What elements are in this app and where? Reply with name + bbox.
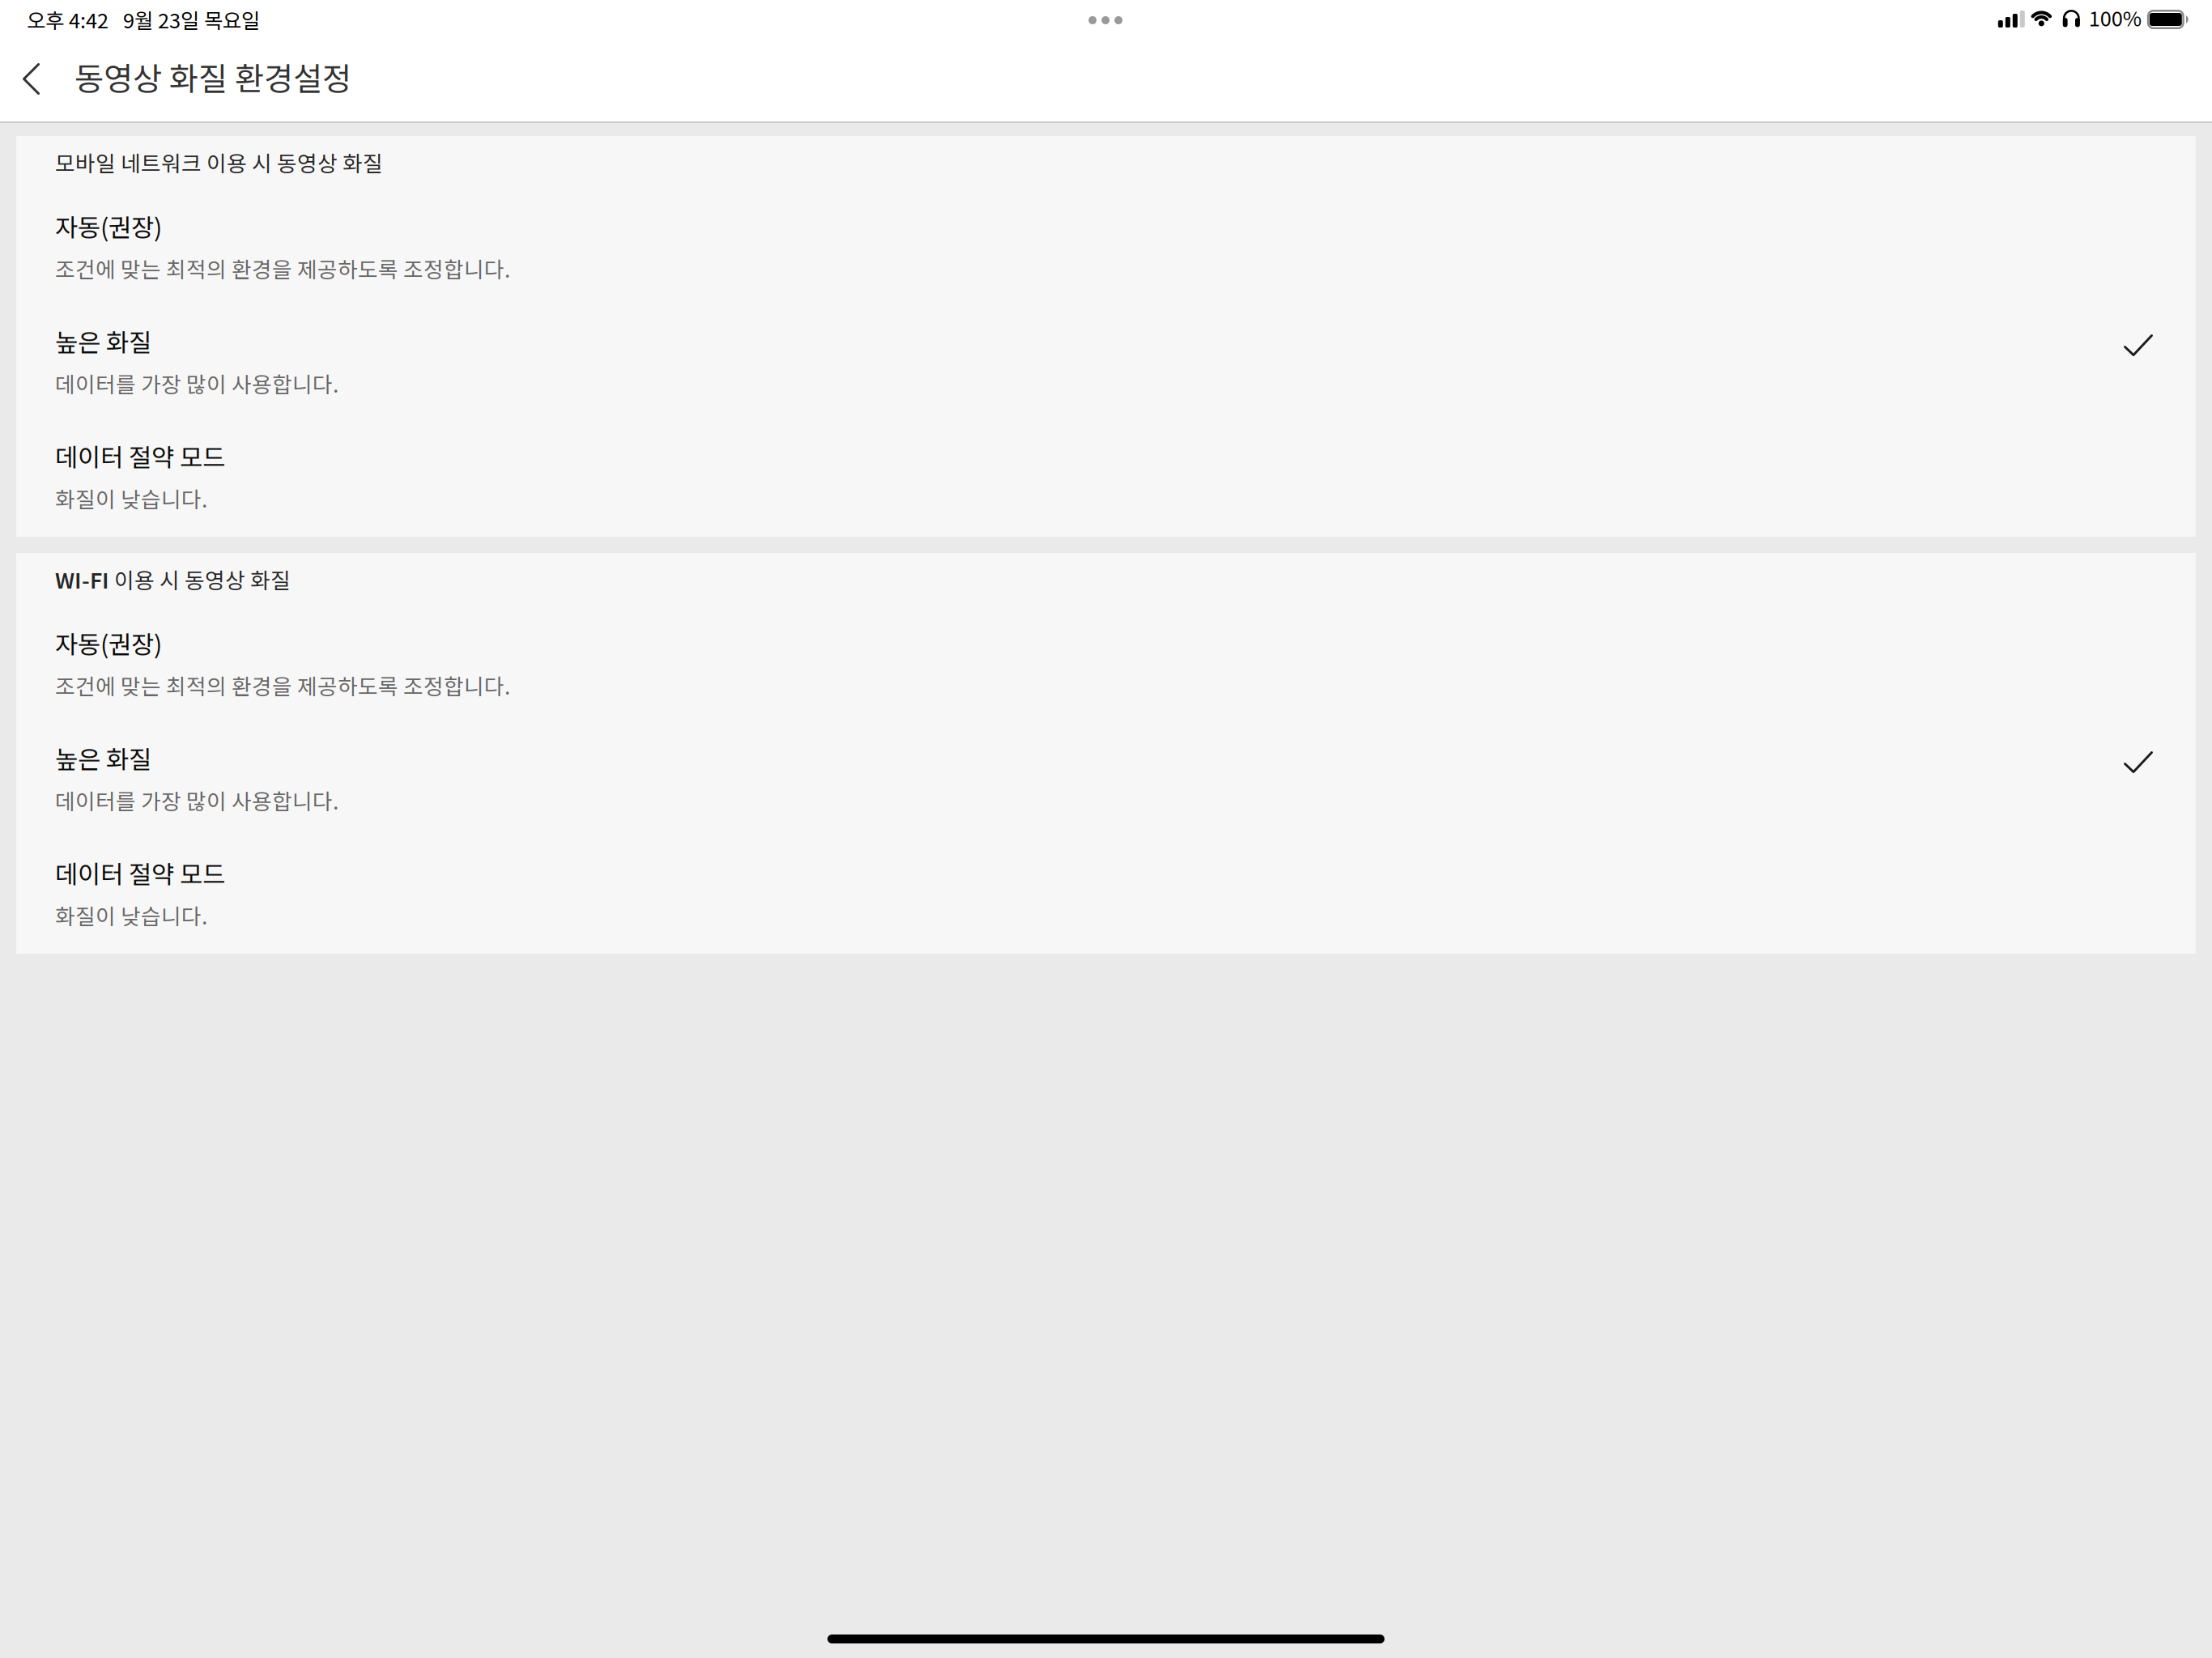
button[interactable]: Back	[0, 39, 59, 121]
staticText: 자동(권장)	[55, 208, 162, 244]
staticText: 데이터를 가장 많이 사용합니다.	[55, 368, 338, 399]
staticText: 조건에 맞는 최적의 환경을 제공하도록 조정합니다.	[55, 253, 510, 284]
staticText: 데이터를 가장 많이 사용합니다.	[55, 784, 338, 816]
button[interactable]: 높은 화질	[16, 323, 2196, 438]
staticText: 이용 시 동영상 화질	[109, 563, 291, 595]
staticText: 오후 4:42 9월 23일 목요일	[27, 5, 260, 34]
button[interactable]: 높은 화질	[16, 740, 2196, 855]
staticText: 화질이 낮습니다.	[55, 483, 207, 514]
button[interactable]: 자동(권장)	[16, 625, 2196, 740]
staticText: 동영상 화질 환경설정	[74, 53, 351, 100]
button[interactable]: 데이터 절약 모드	[16, 438, 2196, 553]
staticText: 높은 화질	[55, 323, 151, 359]
button[interactable]: 자동(권장)	[16, 208, 2196, 323]
staticText: 모바일 네트워크 이용 시 동영상 화질	[55, 147, 383, 178]
staticText: WI-FI	[55, 563, 109, 595]
staticText: 조건에 맞는 최적의 환경을 제공하도록 조정합니다.	[55, 670, 510, 701]
staticText: 데이터 절약 모드	[55, 438, 225, 474]
staticText: 100%	[2089, 2, 2141, 32]
staticText: 화질이 낮습니다.	[55, 899, 207, 931]
button[interactable]: 데이터 절약 모드	[16, 855, 2196, 970]
staticText: 데이터 절약 모드	[55, 855, 225, 891]
staticText: 높은 화질	[55, 740, 151, 776]
staticText: 자동(권장)	[55, 625, 162, 661]
